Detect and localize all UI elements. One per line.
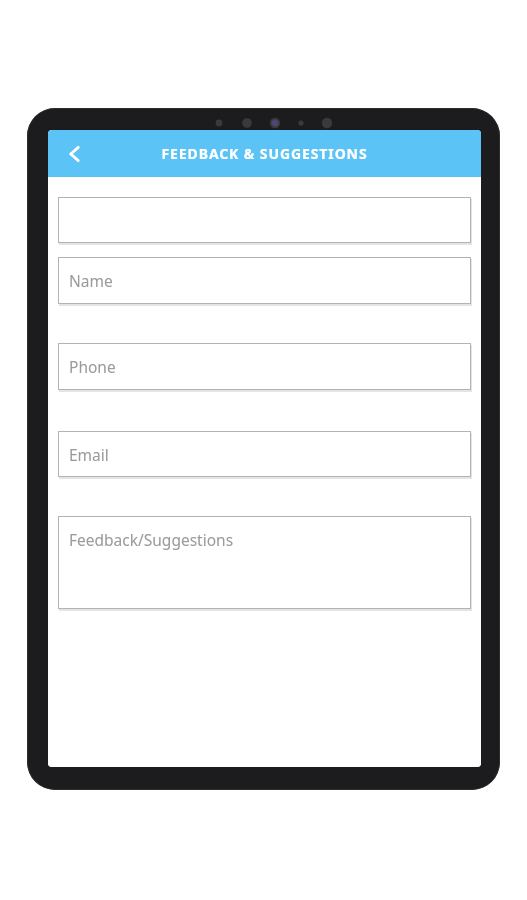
staticText: Name <box>69 270 113 291</box>
button[interactable] <box>58 197 471 243</box>
button[interactable]: Phone <box>58 343 471 390</box>
staticText: FEEDBACK & SUGGESTIONS <box>48 144 481 163</box>
staticText: Phone <box>69 356 116 377</box>
button[interactable]: Email <box>58 431 471 477</box>
staticText: Feedback/Suggestions <box>69 529 234 550</box>
button[interactable]: Feedback/Suggestions <box>58 516 471 609</box>
button[interactable]: Back <box>56 135 94 173</box>
staticText: Email <box>69 444 109 465</box>
button[interactable]: Name <box>58 257 471 304</box>
